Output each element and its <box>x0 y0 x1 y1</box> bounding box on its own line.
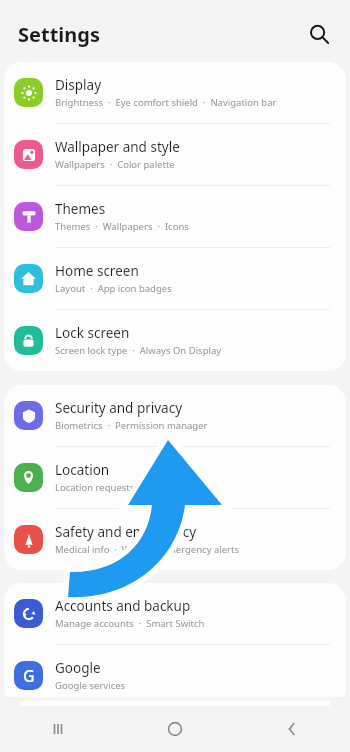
staticText: Layout · App icon badges <box>55 282 172 295</box>
button[interactable]: Themes <box>4 186 346 247</box>
staticText: Safety and emergency <box>55 523 197 541</box>
staticText: Themes · Wallpapers · Icons <box>55 220 189 233</box>
button[interactable]: Recents <box>0 709 116 749</box>
staticText: Location requests <box>55 481 135 494</box>
button[interactable]: G <box>4 645 346 706</box>
staticText: Display <box>55 76 102 94</box>
button[interactable]: Accounts and backup <box>4 583 346 644</box>
staticText: Google <box>55 659 101 677</box>
button[interactable]: Safety and emergency <box>4 509 346 570</box>
button[interactable]: Home <box>116 709 233 749</box>
staticText: Security and privacy <box>55 399 183 417</box>
staticText: Manage accounts · Smart Switch <box>55 617 205 630</box>
staticText: Settings <box>18 21 100 48</box>
staticText: Biometrics · Permission manager <box>55 419 208 432</box>
staticText: Accounts and backup <box>55 597 191 615</box>
staticText: Wallpaper and style <box>55 138 180 156</box>
staticText: Screen lock type · Always On Display <box>55 344 222 357</box>
button[interactable]: Location <box>4 447 346 508</box>
staticText: G <box>23 665 35 687</box>
button[interactable]: Lock screen <box>4 310 346 371</box>
button[interactable]: Display <box>4 62 346 123</box>
button[interactable]: Search <box>302 17 336 51</box>
staticText: Lock screen <box>55 324 130 342</box>
staticText: Google services <box>55 679 126 692</box>
staticText: Wallpapers · Color palette <box>55 158 175 171</box>
button[interactable]: Back <box>233 709 350 749</box>
button[interactable]: Wallpaper and style <box>4 124 346 185</box>
staticText: Themes <box>55 200 106 218</box>
staticText: Home screen <box>55 262 139 280</box>
button[interactable]: Home screen <box>4 248 346 309</box>
staticText: Location <box>55 461 110 479</box>
staticText: Medical info · Wireless emergency alerts <box>55 543 240 556</box>
staticText: Brightness · Eye comfort shield · Naviga… <box>55 96 277 109</box>
button[interactable]: Security and privacy <box>4 385 346 446</box>
